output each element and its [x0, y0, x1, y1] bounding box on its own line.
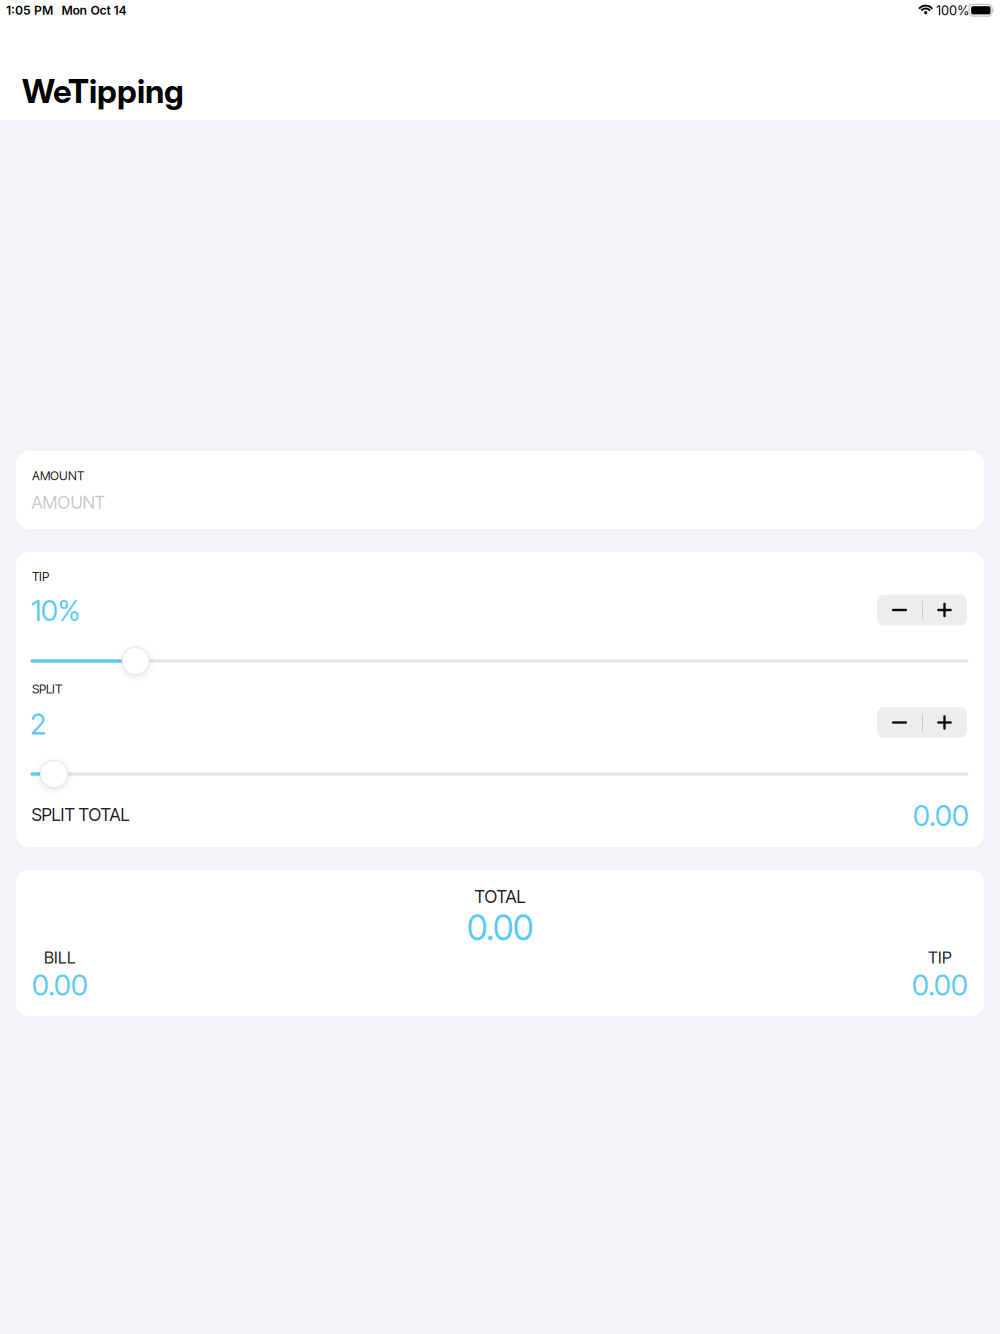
- staticText: BILL: [44, 947, 76, 967]
- button[interactable]: Tip slider: [16, 646, 982, 676]
- staticText: WeTipping: [22, 71, 184, 111]
- button[interactable]: Decrease split: [877, 707, 922, 738]
- staticText: AMOUNT: [32, 468, 84, 483]
- button[interactable]: Increase split: [922, 707, 967, 738]
- button[interactable]: Increase tip: [922, 594, 967, 625]
- staticText: 0.00: [912, 967, 968, 1002]
- button[interactable]: Split slider: [16, 759, 982, 789]
- staticText: 10%: [31, 593, 80, 628]
- staticText: Mon Oct 14: [61, 3, 126, 18]
- staticText: TOTAL: [474, 886, 525, 907]
- staticText: 0.00: [913, 798, 969, 833]
- staticText: 1:05 PM: [6, 3, 53, 18]
- staticText: 0.00: [467, 906, 533, 949]
- button[interactable]: AMOUNT: [16, 451, 984, 529]
- staticText: AMOUNT: [31, 492, 104, 513]
- staticText: 2: [30, 706, 46, 741]
- staticText: SPLIT TOTAL: [31, 804, 129, 825]
- staticText: 100%: [936, 3, 970, 18]
- staticText: 0.00: [32, 967, 88, 1002]
- button[interactable]: Decrease tip: [877, 594, 922, 625]
- staticText: TIP: [32, 569, 49, 584]
- staticText: SPLIT: [32, 681, 62, 696]
- staticText: TIP: [928, 947, 952, 967]
